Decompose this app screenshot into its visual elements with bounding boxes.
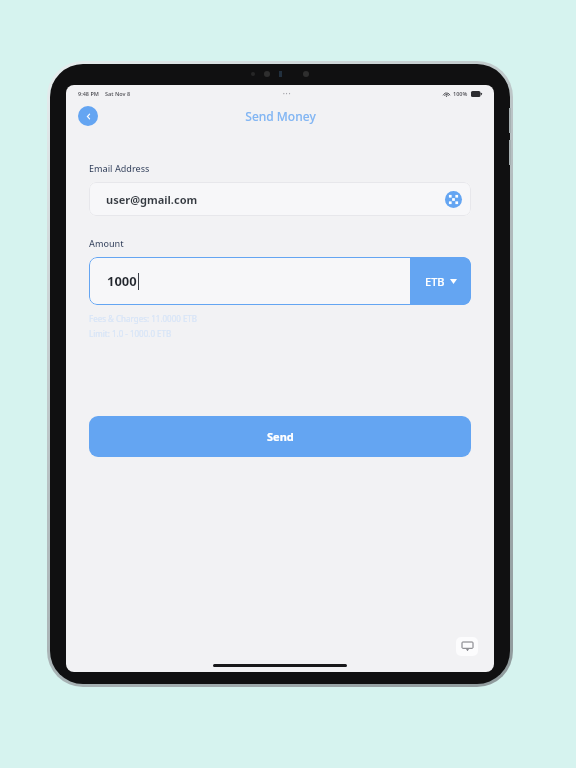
staticText: 1000 bbox=[107, 272, 137, 290]
button[interactable]: 1000 bbox=[89, 257, 410, 305]
staticText: Sat Nov 8 bbox=[105, 90, 131, 97]
staticText: Email Address bbox=[89, 162, 150, 174]
staticText: Send Money bbox=[245, 108, 316, 124]
staticText: user@gmail.com bbox=[106, 192, 198, 207]
staticText: Amount bbox=[89, 237, 124, 249]
staticText: ETB bbox=[425, 274, 445, 289]
button[interactable]: Send bbox=[89, 416, 471, 457]
staticText: 100% bbox=[453, 90, 468, 97]
staticText: Limit: 1.0 - 1000.0 ETB bbox=[89, 328, 172, 339]
button[interactable]: Scan QR code bbox=[445, 191, 462, 208]
button[interactable]: ETB bbox=[410, 257, 471, 305]
staticText: • • • bbox=[283, 91, 291, 97]
staticText: Send bbox=[267, 429, 294, 444]
staticText: Fees & Charges: 11.0000 ETB bbox=[89, 313, 197, 324]
button[interactable]: user@gmail.com bbox=[89, 182, 471, 216]
button[interactable]: Hide keyboard bbox=[456, 637, 478, 656]
button[interactable]: Back bbox=[78, 106, 98, 126]
staticText: 9:48 PM bbox=[78, 90, 99, 97]
